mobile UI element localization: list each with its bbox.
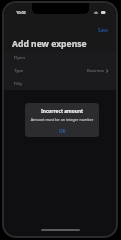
staticText: Type bbox=[14, 68, 24, 74]
staticText: Add new expense bbox=[12, 38, 87, 50]
staticText: Fifty bbox=[14, 81, 23, 87]
staticText: Flyers bbox=[14, 55, 26, 61]
staticText: 10:02 bbox=[16, 10, 26, 15]
staticText: OK bbox=[59, 128, 66, 134]
staticText: Business bbox=[87, 68, 104, 74]
button[interactable]: Fifty bbox=[4, 77, 116, 90]
button[interactable]: Save bbox=[98, 27, 108, 33]
staticText: Incorrect amount bbox=[25, 108, 99, 115]
staticText: Save bbox=[98, 27, 108, 33]
button[interactable]: Flyers bbox=[4, 51, 116, 64]
button[interactable]: OK bbox=[25, 125, 99, 137]
button[interactable]: Type bbox=[4, 64, 116, 77]
staticText: Amount must be an integer number bbox=[25, 117, 99, 122]
